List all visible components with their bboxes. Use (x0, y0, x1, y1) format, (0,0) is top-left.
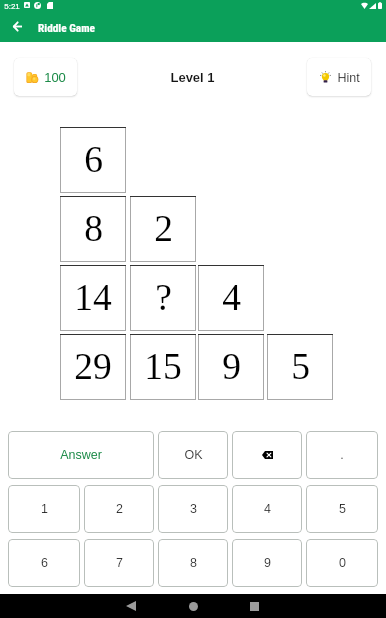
button[interactable]: ? (130, 265, 196, 331)
staticText: 4 (222, 277, 241, 319)
button[interactable]: . (306, 431, 378, 479)
button[interactable]: 14 (60, 265, 126, 331)
button[interactable]: 29 (60, 334, 126, 400)
staticText: 6 (84, 139, 103, 181)
button[interactable]: OK (158, 431, 228, 479)
staticText: Riddle Game (38, 22, 95, 35)
button[interactable]: Hint (307, 58, 371, 96)
button[interactable]: 4 (198, 265, 264, 331)
button[interactable]: 6 (60, 127, 126, 193)
button[interactable]: Recents (225, 594, 284, 618)
staticText: Hint (337, 71, 360, 85)
staticText: 15 (144, 346, 182, 388)
staticText: 3 (190, 502, 197, 516)
staticText: 8 (190, 556, 197, 570)
staticText: 29 (74, 346, 112, 388)
button[interactable]: 3 (158, 485, 228, 533)
staticText: 5 (291, 346, 310, 388)
staticText: 5 (339, 502, 346, 516)
staticText: 2 (154, 208, 173, 250)
button[interactable]: Answer (8, 431, 154, 479)
staticText: OK (184, 448, 203, 462)
staticText: 6 (41, 556, 48, 570)
button[interactable]: 8 (60, 196, 126, 262)
staticText: 9 (222, 346, 241, 388)
staticText: ? (155, 277, 172, 319)
button[interactable]: 9 (198, 334, 264, 400)
staticText: . (340, 448, 344, 462)
button[interactable]: 4 (232, 485, 302, 533)
button[interactable]: Back (4, 13, 30, 39)
button[interactable]: 2 (130, 196, 196, 262)
button[interactable]: 1 (8, 485, 80, 533)
staticText: 5:21 (4, 2, 20, 11)
staticText: 8 (84, 208, 103, 250)
staticText: 100 (44, 70, 66, 85)
button[interactable]: 100 (14, 58, 77, 96)
button[interactable]: Backspace (232, 431, 302, 479)
staticText: 2 (116, 502, 123, 516)
button[interactable]: 9 (232, 539, 302, 587)
button[interactable]: 8 (158, 539, 228, 587)
staticText: Answer (60, 448, 102, 462)
button[interactable]: 2 (84, 485, 154, 533)
button[interactable]: 6 (8, 539, 80, 587)
staticText: 14 (74, 277, 112, 319)
button[interactable]: 5 (306, 485, 378, 533)
staticText: Level 1 (170, 70, 215, 85)
button[interactable]: 7 (84, 539, 154, 587)
staticText: 7 (116, 556, 123, 570)
staticText: 0 (339, 556, 346, 570)
button[interactable]: 5 (267, 334, 333, 400)
staticText: 9 (264, 556, 271, 570)
button[interactable]: 15 (130, 334, 196, 400)
staticText: 4 (264, 502, 271, 516)
button[interactable]: 0 (306, 539, 378, 587)
button[interactable]: Home (162, 594, 225, 618)
staticText: 1 (41, 502, 48, 516)
button[interactable]: Back (100, 594, 162, 618)
